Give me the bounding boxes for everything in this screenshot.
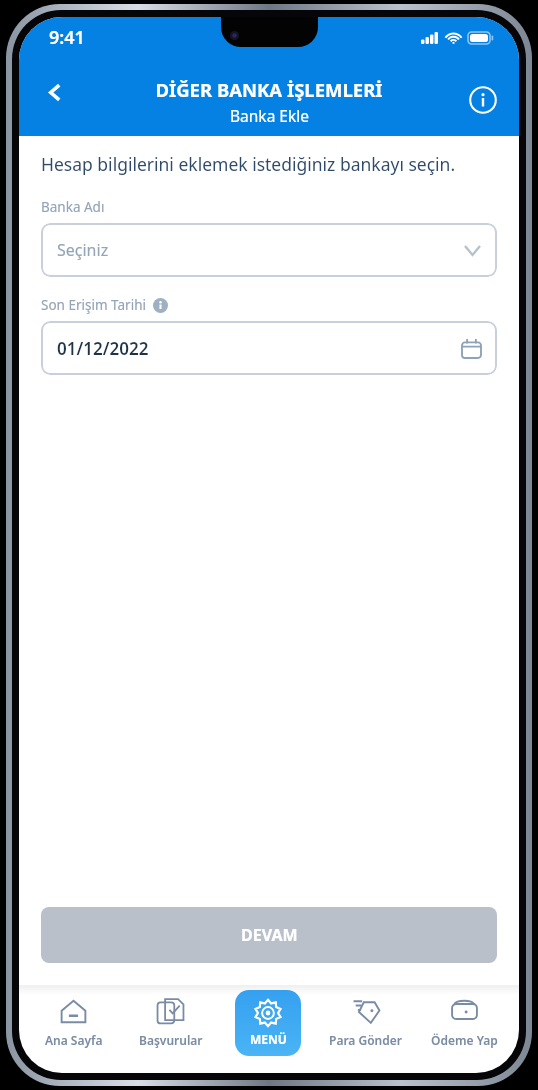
button[interactable]: Ödeme Yap <box>415 985 513 1061</box>
staticText: Banka Ekle <box>230 105 309 126</box>
staticText: DEVAM <box>241 924 298 946</box>
button[interactable]: Banka Adı seçiniz <box>41 223 497 277</box>
staticText: Hesap bilgilerini eklemek istediğiniz ba… <box>41 152 456 176</box>
staticText: Ana Sayfa <box>45 1032 103 1048</box>
button[interactable]: Back <box>33 70 77 114</box>
staticText: Ödeme Yap <box>431 1032 498 1048</box>
staticText: DİĞER BANKA İŞLEMLERİ <box>155 77 383 102</box>
button[interactable]: Bilgi <box>152 297 168 313</box>
button[interactable]: MENÜ <box>235 990 301 1056</box>
button[interactable]: Para Gönder <box>317 985 415 1061</box>
staticText: Banka Adı <box>41 198 105 216</box>
staticText: Seçiniz <box>57 239 109 261</box>
button[interactable]: Son Erişim Tarihi seç <box>41 321 497 375</box>
staticText: Başvurular <box>139 1032 203 1048</box>
button[interactable]: Ana Sayfa <box>25 985 122 1061</box>
staticText: MENÜ <box>250 1031 287 1047</box>
button[interactable]: Information <box>461 78 505 122</box>
staticText: Son Erişim Tarihi <box>41 296 146 314</box>
staticText: 9:41 <box>49 25 85 50</box>
staticText: 01/12/2022 <box>57 337 149 360</box>
button[interactable]: Başvurular <box>122 985 219 1061</box>
button[interactable]: DEVAM <box>41 907 497 963</box>
staticText: Para Gönder <box>329 1032 403 1048</box>
